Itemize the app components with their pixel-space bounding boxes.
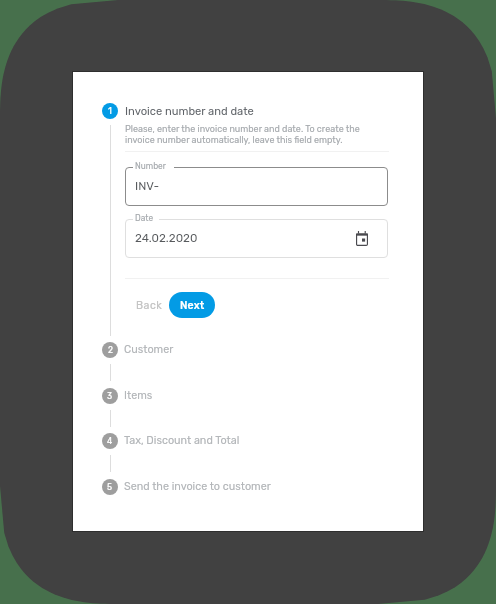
button[interactable]: 5 (95, 471, 395, 503)
button[interactable]: 2 (95, 334, 395, 366)
staticText: Tax, Discount and Total (124, 434, 240, 447)
staticText: 4 (107, 436, 113, 446)
staticText: Customer (124, 343, 174, 356)
staticText: 24.02.2020 (135, 231, 198, 245)
staticText: Number (135, 161, 166, 171)
staticText: 2 (108, 345, 113, 355)
button[interactable]: Back (129, 292, 170, 318)
staticText: 3 (107, 391, 113, 401)
staticText: Invoice number and date (125, 105, 254, 118)
staticText: Items (124, 389, 153, 402)
button[interactable]: Pick date (351, 227, 373, 249)
button[interactable]: 3 (95, 380, 395, 412)
staticText: 5 (107, 482, 113, 492)
staticText: Back (136, 299, 163, 312)
staticText: Please, enter the invoice number and dat… (125, 124, 360, 145)
staticText: Date (135, 213, 154, 223)
staticText: Next (180, 299, 205, 311)
staticText: Send the invoice to customer (124, 480, 271, 493)
staticText: INV- (135, 179, 160, 193)
button[interactable]: Next (169, 292, 215, 318)
button[interactable]: 4 (95, 425, 395, 457)
staticText: 1 (108, 106, 112, 117)
